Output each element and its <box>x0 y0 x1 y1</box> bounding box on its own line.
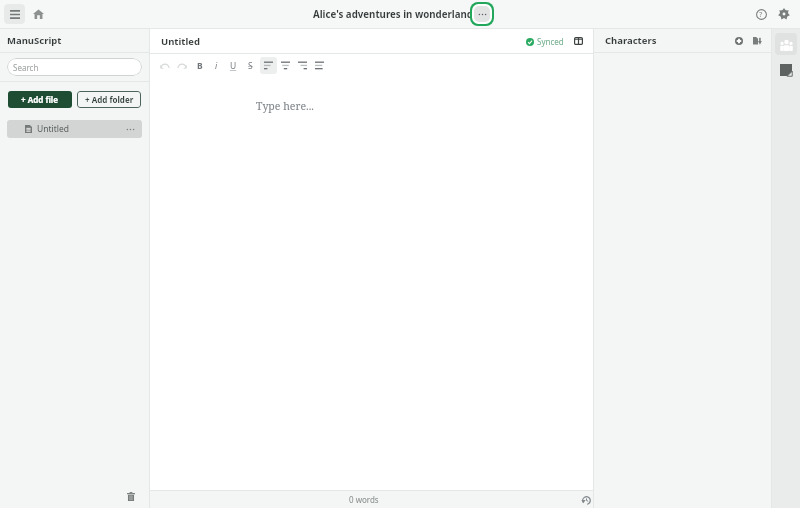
staticText: S <box>248 60 253 72</box>
button[interactable]: Home <box>29 5 47 23</box>
staticText: + Add folder <box>85 94 134 105</box>
button[interactable]: Add character <box>731 33 746 48</box>
button[interactable]: Settings <box>774 4 794 24</box>
button[interactable]: Untitled <box>7 120 142 138</box>
button[interactable]: More options <box>474 6 490 22</box>
staticText: + Add file <box>21 94 59 105</box>
staticText: 0 words <box>349 494 379 505</box>
button[interactable]: History <box>579 493 593 507</box>
staticText: i <box>215 60 218 72</box>
button[interactable]: S <box>242 57 259 74</box>
button[interactable]: Redo <box>173 57 190 74</box>
button[interactable]: Add folder <box>750 33 765 48</box>
staticText: ? <box>759 9 763 19</box>
staticText: Type here... <box>256 99 314 113</box>
button[interactable]: Search <box>7 58 142 76</box>
button[interactable]: Characters <box>775 33 797 55</box>
button[interactable]: i <box>208 57 225 74</box>
staticText: Search <box>13 62 39 73</box>
button[interactable]: U <box>225 57 242 74</box>
button[interactable]: + Add folder <box>77 91 141 108</box>
button[interactable]: Align <box>311 57 328 74</box>
button[interactable]: Notes <box>775 59 797 81</box>
button[interactable]: Split view <box>571 34 585 48</box>
staticText: Untitled <box>37 123 70 135</box>
staticText: Alice's adventures in wonderland <box>313 8 473 21</box>
staticText: Synced <box>537 36 564 47</box>
staticText: ManuScript <box>7 34 62 47</box>
staticText: B <box>197 60 203 72</box>
staticText: Characters <box>605 34 657 47</box>
button[interactable]: Align <box>277 57 294 74</box>
button[interactable]: Align <box>294 57 311 74</box>
button[interactable]: Help <box>751 4 771 24</box>
staticText: Untitled <box>161 35 200 48</box>
button[interactable]: + Add file <box>8 91 72 108</box>
button[interactable]: B <box>191 57 208 74</box>
button[interactable]: Align <box>260 57 277 74</box>
staticText: U <box>230 60 237 72</box>
button[interactable]: Trash <box>122 487 140 505</box>
button[interactable]: Undo <box>156 57 173 74</box>
button[interactable]: Synced <box>526 36 564 47</box>
button[interactable]: Menu <box>4 4 25 24</box>
